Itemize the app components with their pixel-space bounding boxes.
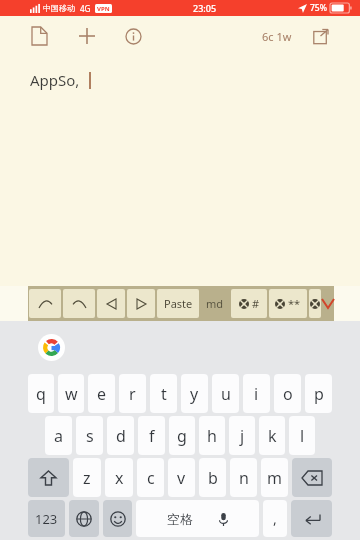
staticText: m — [267, 467, 282, 489]
staticText: 4G — [80, 3, 91, 14]
button[interactable]: n — [230, 458, 257, 497]
staticText: y — [190, 383, 199, 405]
staticText: VPN — [97, 5, 110, 13]
staticText: t — [161, 383, 167, 405]
staticText: AppSo, — [30, 70, 80, 90]
button[interactable]: u — [212, 374, 239, 413]
button[interactable]: d — [107, 416, 134, 455]
staticText: l — [300, 425, 305, 447]
button[interactable]: Backspace — [292, 458, 332, 497]
staticText: , — [273, 509, 277, 528]
button[interactable]: s — [76, 416, 103, 455]
staticText: 75% — [310, 2, 327, 14]
staticText: h — [207, 425, 217, 447]
staticText: f — [149, 425, 155, 447]
button[interactable]: b — [199, 458, 226, 497]
staticText: Paste — [164, 296, 193, 311]
staticText: b — [208, 467, 218, 489]
button[interactable]: r — [119, 374, 146, 413]
staticText: s — [86, 425, 94, 447]
button[interactable]: # — [231, 289, 267, 318]
button[interactable]: Enter — [291, 500, 332, 537]
button[interactable]: g — [169, 416, 195, 455]
button[interactable]: Paste — [157, 289, 199, 318]
button[interactable]: Add — [74, 23, 100, 49]
button[interactable]: md — [200, 286, 230, 321]
staticText: 空格 — [167, 511, 193, 527]
button[interactable]: z — [73, 458, 101, 497]
button[interactable]: Export — [308, 23, 334, 49]
button[interactable]: t — [150, 374, 177, 413]
button[interactable]: New document — [26, 23, 52, 49]
staticText: u — [221, 383, 231, 405]
button[interactable]: 6c 1w — [260, 29, 294, 44]
button[interactable]: Google search — [38, 334, 65, 361]
staticText: p — [314, 383, 324, 405]
staticText: ** — [288, 296, 301, 311]
button[interactable]: y — [181, 374, 208, 413]
button[interactable]: l — [289, 416, 315, 455]
button[interactable]: i — [243, 374, 270, 413]
button[interactable] — [63, 289, 95, 318]
button[interactable]: k — [259, 416, 285, 455]
staticText: 23:05 — [193, 2, 217, 14]
staticText: # — [252, 296, 260, 311]
staticText: 中国移动 — [43, 3, 75, 13]
staticText: z — [83, 467, 91, 489]
staticText: k — [268, 425, 277, 447]
button[interactable]: p — [305, 374, 332, 413]
staticText: i — [254, 383, 259, 405]
button[interactable]: Hide keyboard — [322, 286, 334, 321]
button[interactable] — [127, 289, 155, 318]
staticText: r — [129, 383, 136, 405]
button[interactable]: v — [168, 458, 195, 497]
button[interactable]: a — [45, 416, 72, 455]
button[interactable]: h — [199, 416, 225, 455]
button[interactable]: j — [229, 416, 255, 455]
button[interactable] — [309, 289, 321, 318]
button[interactable] — [97, 289, 125, 318]
button[interactable]: e — [88, 374, 115, 413]
staticText: o — [283, 383, 293, 405]
staticText: c — [147, 467, 155, 489]
button[interactable]: m — [261, 458, 288, 497]
staticText: md — [206, 296, 224, 311]
staticText: 123 — [35, 510, 58, 528]
button[interactable]: o — [274, 374, 301, 413]
staticText: x — [115, 467, 124, 489]
button[interactable]: ** — [269, 289, 307, 318]
staticText: q — [36, 383, 46, 405]
staticText: a — [54, 425, 63, 447]
staticText: j — [240, 425, 245, 447]
staticText: e — [97, 383, 107, 405]
button[interactable]: c — [137, 458, 164, 497]
staticText: d — [116, 425, 126, 447]
button[interactable]: f — [138, 416, 165, 455]
staticText: v — [177, 467, 186, 489]
staticText: 6c 1w — [262, 29, 292, 44]
staticText: g — [177, 425, 187, 447]
button[interactable]: x — [105, 458, 133, 497]
button[interactable]: 空格 — [136, 500, 259, 537]
button[interactable]: Info — [120, 23, 146, 49]
staticText: w — [65, 383, 78, 405]
button[interactable]: w — [58, 374, 84, 413]
button[interactable]: q — [28, 374, 54, 413]
button[interactable]: Emoji — [103, 500, 132, 537]
button[interactable]: , — [263, 500, 287, 537]
button[interactable]: 123 — [28, 500, 65, 537]
button[interactable]: Change language — [69, 500, 99, 537]
staticText: n — [239, 467, 249, 489]
button[interactable]: Shift — [28, 458, 69, 497]
button[interactable] — [29, 289, 61, 318]
